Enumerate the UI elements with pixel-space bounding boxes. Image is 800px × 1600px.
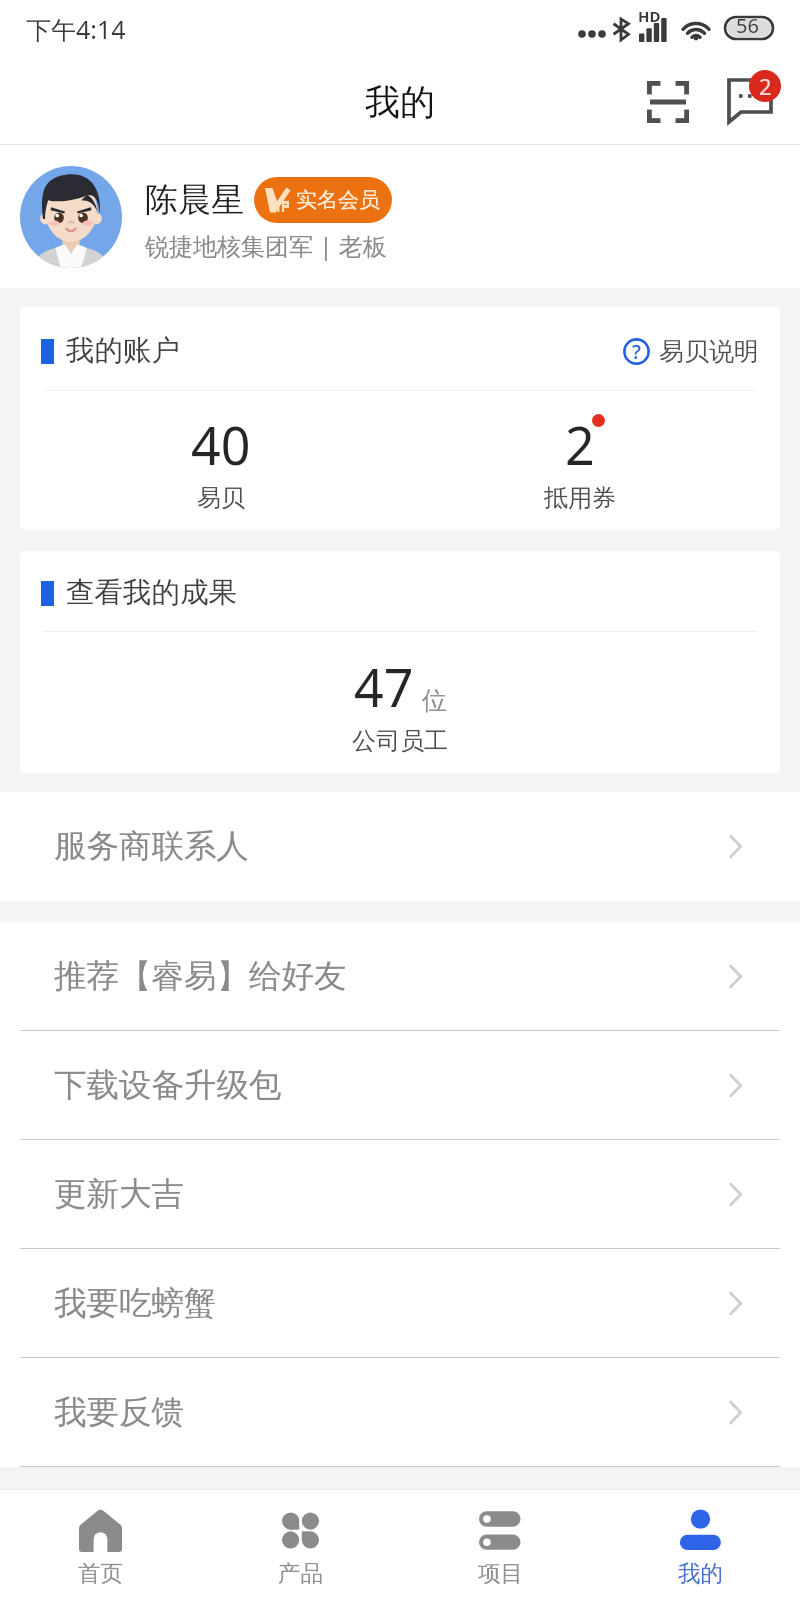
staticText: 抵用券 <box>544 483 616 513</box>
staticText: 我的 <box>678 1559 723 1587</box>
staticText: HD <box>638 6 661 26</box>
staticText: 陈晨星 <box>145 179 244 221</box>
staticText: 40 <box>191 409 251 480</box>
staticText: 产品 <box>278 1559 323 1587</box>
staticText: 项目 <box>478 1559 523 1587</box>
staticText: 易贝说明 <box>659 336 759 367</box>
staticText: 更新大吉 <box>54 1174 184 1215</box>
staticText: 我的账户 <box>66 333 180 369</box>
button[interactable]: 推荐【睿易】给好友 <box>0 922 800 1030</box>
staticText: 公司员工 <box>352 726 448 756</box>
staticText: 查看我的成果 <box>66 575 237 611</box>
staticText: 47 <box>354 651 414 722</box>
staticText: ? <box>632 338 641 365</box>
staticText: 锐捷地核集团军 | 老板 <box>145 229 387 262</box>
button[interactable]: 我的 <box>600 1490 800 1600</box>
staticText: 首页 <box>78 1559 123 1587</box>
button[interactable]: 陈晨星 <box>0 145 800 288</box>
button[interactable]: Messages <box>723 73 781 131</box>
button[interactable]: 产品 <box>200 1490 400 1600</box>
staticText: 位 <box>422 685 447 716</box>
staticText: 56 <box>736 12 759 39</box>
staticText: 我要反馈 <box>54 1392 184 1433</box>
button[interactable]: 项目 <box>400 1490 600 1600</box>
staticText: 易贝 <box>197 483 245 513</box>
button[interactable]: 2 <box>400 391 759 530</box>
button[interactable]: 更新大吉 <box>0 1140 800 1248</box>
staticText: 2 <box>759 71 772 101</box>
staticText: 实名会员 <box>296 187 380 213</box>
button[interactable]: 查看我的成果 <box>20 551 780 773</box>
staticText: 推荐【睿易】给好友 <box>54 956 347 997</box>
staticText: 我要吃螃蟹 <box>54 1283 217 1324</box>
button[interactable]: 下载设备升级包 <box>0 1031 800 1139</box>
staticText: 下载设备升级包 <box>54 1065 282 1106</box>
staticText: 2 <box>565 409 595 480</box>
staticText: 下午4:14 <box>26 12 126 46</box>
button[interactable]: ? <box>619 332 763 371</box>
button[interactable]: 服务商联系人 <box>0 792 800 900</box>
button[interactable]: 我要反馈 <box>0 1358 800 1466</box>
button[interactable]: 我要吃螃蟹 <box>0 1249 800 1357</box>
button[interactable]: 首页 <box>0 1490 200 1600</box>
staticText: 服务商联系人 <box>54 826 249 867</box>
button[interactable]: 40 <box>41 391 400 530</box>
staticText: 我的 <box>365 80 435 124</box>
button[interactable]: 实名会员 <box>254 177 392 223</box>
button[interactable]: Scan code <box>636 70 700 134</box>
